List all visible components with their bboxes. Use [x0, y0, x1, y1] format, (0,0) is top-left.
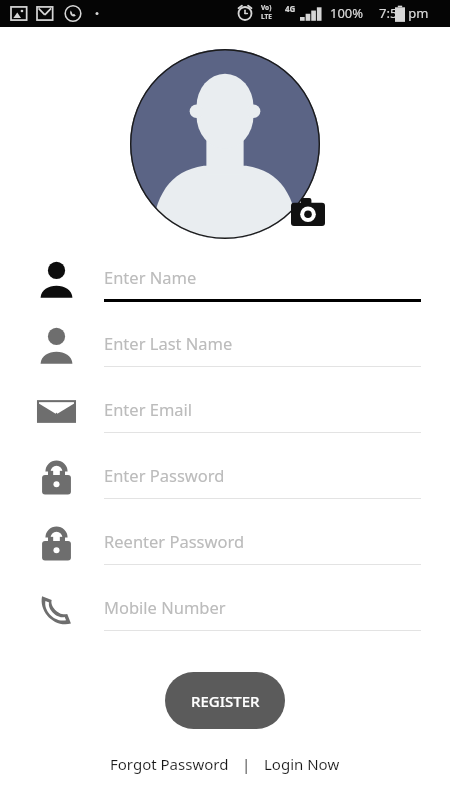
button[interactable]: Password: [0, 449, 450, 515]
other: Last name: [38, 327, 75, 364]
staticText: Mobile Number: [104, 596, 226, 618]
staticText: REGISTER: [191, 691, 260, 711]
button[interactable]: Name: [0, 251, 450, 317]
button[interactable]: Login Now: [262, 750, 342, 778]
other: Mobile number: [38, 591, 75, 628]
staticText: Enter Last Name: [104, 332, 233, 354]
button[interactable]: Mobile number: [0, 581, 450, 647]
button[interactable]: REGISTER: [165, 672, 285, 729]
other: Password: [38, 459, 75, 496]
button[interactable]: Forgot Password: [108, 750, 231, 778]
staticText: 4G: [285, 3, 296, 14]
staticText: Forgot Password: [110, 754, 229, 774]
staticText: Vo): [261, 3, 272, 12]
staticText: 7:51 pm: [379, 4, 429, 22]
button[interactable]: Reenter password: [0, 515, 450, 581]
staticText: 100%: [330, 4, 364, 22]
other: Name: [38, 261, 75, 298]
other: Reenter password: [38, 525, 75, 562]
staticText: Enter Name: [104, 266, 197, 288]
staticText: LTE: [261, 12, 272, 21]
staticText: Reenter Password: [104, 530, 245, 552]
staticText: |: [242, 754, 251, 774]
staticText: Enter Email: [104, 398, 193, 420]
staticText: Enter Password: [104, 464, 225, 486]
button[interactable]: Last name: [0, 317, 450, 383]
button[interactable]: Email: [0, 383, 450, 449]
staticText: Login Now: [264, 754, 340, 774]
other: Email: [38, 393, 75, 430]
button[interactable]: Change profile photo: [130, 49, 320, 239]
